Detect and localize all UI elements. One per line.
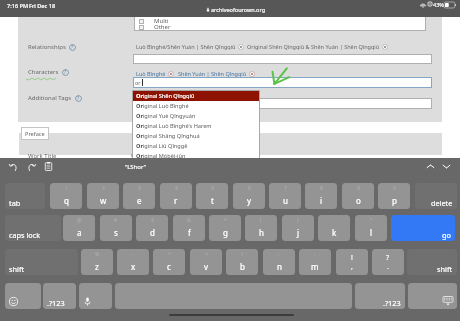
button[interactable]: go bbox=[391, 215, 455, 241]
button[interactable]: caps lock bbox=[5, 215, 61, 241]
button[interactable]: : bbox=[299, 249, 331, 275]
staticText: g bbox=[223, 227, 228, 238]
button[interactable]: ? bbox=[372, 249, 404, 275]
button[interactable]: Help bbox=[75, 95, 82, 102]
staticText: caps lock bbox=[9, 230, 41, 240]
button[interactable]: .?123 bbox=[355, 283, 405, 309]
staticText: 6 bbox=[248, 185, 251, 192]
staticText: x bbox=[131, 261, 136, 272]
button[interactable]: Dictation bbox=[79, 283, 112, 309]
button[interactable]: 6 bbox=[233, 183, 265, 209]
button[interactable]: “LShor” bbox=[110, 160, 160, 173]
staticText: b bbox=[240, 261, 245, 272]
button[interactable]: Original Luò Bīnghé bbox=[132, 101, 260, 111]
button[interactable]: Preface bbox=[21, 127, 49, 140]
staticText: / bbox=[241, 251, 243, 258]
staticText: p bbox=[392, 195, 397, 206]
button[interactable]: ' bbox=[318, 215, 350, 241]
button[interactable]: Original Shěn Qīngqiū bbox=[132, 91, 260, 101]
button[interactable]: Remove tag bbox=[249, 71, 255, 77]
button[interactable]: & bbox=[173, 215, 205, 241]
button[interactable]: or bbox=[133, 77, 432, 88]
staticText: q bbox=[64, 195, 69, 206]
staticText: 7 bbox=[284, 185, 287, 192]
button[interactable]: Original Luò Bīnghé's Harem bbox=[132, 121, 260, 131]
staticText: , bbox=[351, 262, 353, 272]
staticText: shift bbox=[9, 264, 25, 274]
staticText: Relationships bbox=[28, 43, 66, 51]
button[interactable]: 5 bbox=[196, 183, 228, 209]
staticText: . bbox=[387, 262, 389, 272]
button[interactable]: 4 bbox=[160, 183, 192, 209]
button[interactable]: Help bbox=[69, 44, 76, 51]
staticText: i bbox=[320, 195, 323, 206]
button[interactable]: Original Yuè Qīngyuán bbox=[132, 111, 260, 121]
staticText: n bbox=[277, 261, 282, 272]
button[interactable]: Hide keyboard bbox=[408, 283, 457, 309]
staticText: w bbox=[100, 195, 107, 206]
button[interactable]: Redo bbox=[25, 160, 38, 173]
button[interactable]: " bbox=[355, 215, 387, 241]
staticText: " bbox=[370, 217, 373, 224]
staticText: Shěn Yuán | Shěn Qīngqiū bbox=[178, 70, 247, 77]
staticText: Original Yuè Qīngyuán bbox=[136, 112, 196, 120]
staticText: d bbox=[150, 227, 155, 238]
staticText: f bbox=[188, 227, 191, 238]
button[interactable]: 0 bbox=[378, 183, 410, 209]
button[interactable]: Remove tag bbox=[238, 44, 244, 50]
button[interactable]: Paste bbox=[42, 160, 55, 173]
button[interactable]: * bbox=[209, 215, 241, 241]
staticText: Original Luò Bīnghé's Harem bbox=[136, 122, 212, 130]
button[interactable]: 8 bbox=[305, 183, 337, 209]
button[interactable]: $ bbox=[136, 215, 168, 241]
staticText: t bbox=[211, 195, 214, 206]
button[interactable]: / bbox=[226, 249, 258, 275]
staticText: ; bbox=[278, 251, 280, 258]
staticText: archiveofourown.org bbox=[211, 6, 266, 13]
button[interactable]: 2 bbox=[87, 183, 119, 209]
staticText: 0 bbox=[393, 185, 396, 192]
button[interactable]: % bbox=[81, 249, 113, 275]
button[interactable]: delete bbox=[415, 183, 457, 209]
button[interactable]: Remove tag bbox=[382, 44, 388, 50]
button[interactable]: 7 bbox=[269, 183, 301, 209]
staticText: 43% bbox=[433, 1, 444, 8]
button[interactable]: # bbox=[100, 215, 132, 241]
button[interactable]: = bbox=[190, 249, 222, 275]
button[interactable]: + bbox=[153, 249, 185, 275]
button[interactable]: Undo bbox=[7, 160, 20, 173]
button[interactable]: @ bbox=[63, 215, 95, 241]
button[interactable]: Next bbox=[440, 160, 453, 173]
button[interactable]: ! bbox=[336, 249, 368, 275]
staticText: + bbox=[168, 251, 171, 258]
button[interactable]: Help bbox=[62, 69, 69, 76]
button[interactable]: Remove tag bbox=[168, 71, 174, 77]
button[interactable]: Original Liǔ Qīnggē bbox=[132, 141, 260, 151]
button[interactable]: ; bbox=[263, 249, 295, 275]
button[interactable]: Original Shāng Qīnghuá bbox=[132, 131, 260, 141]
button[interactable]: .?123 bbox=[43, 283, 76, 309]
button[interactable]: Other bbox=[139, 23, 171, 31]
button[interactable]: shift bbox=[407, 249, 457, 275]
button[interactable]: - bbox=[117, 249, 149, 275]
staticText: 2 bbox=[102, 185, 105, 192]
button[interactable]: ) bbox=[282, 215, 314, 241]
button[interactable] bbox=[133, 98, 432, 109]
button[interactable] bbox=[133, 54, 432, 64]
button[interactable]: Original Mòběi-jūn bbox=[132, 151, 260, 160]
button[interactable]: Multi bbox=[139, 17, 169, 25]
button[interactable]: Previous bbox=[424, 160, 437, 173]
staticText: s bbox=[114, 227, 118, 238]
button[interactable]: 3 bbox=[123, 183, 155, 209]
button[interactable]: shift bbox=[5, 249, 78, 275]
staticText: .?123 bbox=[383, 298, 401, 308]
button[interactable]: Emoji bbox=[5, 283, 41, 309]
staticText: 7:16 PM bbox=[7, 2, 29, 10]
button[interactable]: 9 bbox=[342, 183, 374, 209]
staticText: or bbox=[135, 79, 141, 86]
button[interactable]: 1 bbox=[50, 183, 82, 209]
button[interactable]: ( bbox=[245, 215, 277, 241]
staticText: Original Luò Bīnghé bbox=[136, 102, 189, 110]
button[interactable]: tab bbox=[5, 183, 45, 209]
